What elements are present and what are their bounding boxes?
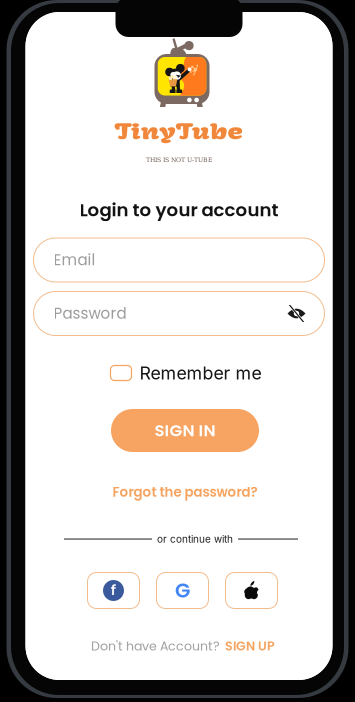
staticText: Remember me [139,362,261,384]
staticText: Login to your account [79,197,278,223]
staticText: Password [53,303,126,324]
staticText: SIGN UP [225,637,275,655]
staticText: TinyTube [134,119,224,144]
staticText: f [110,581,116,599]
staticText: Email [53,249,95,271]
staticText: SIGN IN [154,419,215,442]
staticText: G [175,576,190,604]
button[interactable]: Email [33,238,324,282]
button[interactable]: Continue with Google [156,572,208,608]
staticText: Forgot the password? [112,483,257,501]
staticText: THIS IS NOT U-TUBE [146,156,212,163]
staticText: Don't have Account? [91,637,220,655]
button[interactable]: Remember me [110,362,261,384]
button[interactable]: Forgot the password? [112,483,257,501]
button[interactable]: Don't have Account? [91,637,275,655]
button[interactable]: Password [33,291,324,335]
staticText: or continue with [157,533,233,545]
button[interactable]: SIGN IN [111,409,259,452]
button[interactable]: Continue with Apple [225,572,277,608]
button[interactable]: Continue with Facebook [87,572,139,608]
